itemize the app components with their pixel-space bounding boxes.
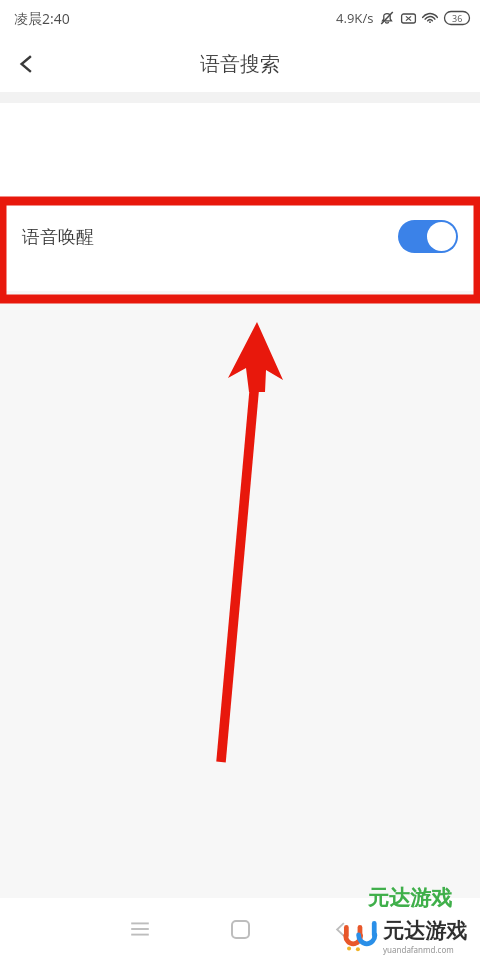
staticText: 36 — [452, 12, 463, 24]
staticText: yuandafanmd.com — [383, 944, 454, 955]
button[interactable]: Back — [316, 905, 364, 953]
button[interactable]: Recent apps — [116, 905, 164, 953]
staticText: 元达游戏 — [368, 885, 452, 911]
staticText: 元达游戏 — [383, 918, 467, 944]
staticText: 4.9K/s — [336, 9, 374, 27]
staticText: 语音搜索 — [200, 52, 280, 77]
button[interactable]: Home — [216, 905, 264, 953]
button[interactable]: 语音唤醒 — [0, 200, 480, 291]
staticText: 语音唤醒 — [22, 226, 94, 249]
button[interactable]: Back — [0, 38, 52, 90]
staticText: 凌晨2:40 — [14, 9, 70, 28]
button[interactable]: Voice wake toggle — [398, 220, 458, 253]
